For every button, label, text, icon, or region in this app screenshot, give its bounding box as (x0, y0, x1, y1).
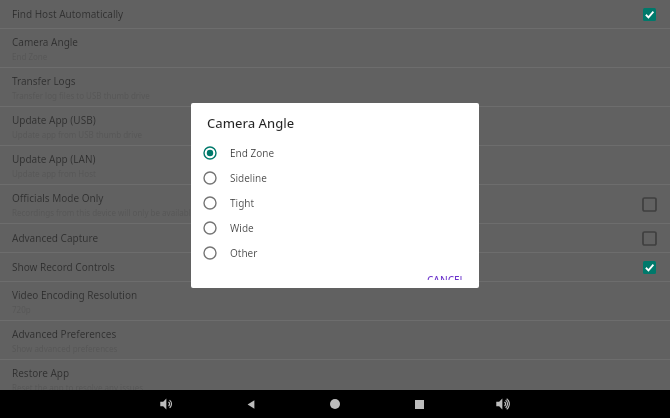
staticText: Tight (230, 196, 255, 210)
staticText: End Zone (230, 146, 275, 160)
staticText: Sideline (230, 171, 267, 185)
button[interactable]: Transfer Logs (0, 68, 670, 106)
staticText: Advanced Preferences (12, 327, 117, 341)
button[interactable]: Show Record Controls (638, 256, 660, 278)
button[interactable]: Sideline (191, 165, 479, 190)
staticText: CANCEL (427, 273, 465, 280)
staticText: Video Encoding Resolution (12, 288, 138, 302)
staticText: Other (230, 246, 258, 260)
staticText: Camera Angle (12, 35, 78, 49)
button[interactable]: Advanced Preferences (0, 321, 670, 359)
staticText: Camera Angle (207, 114, 295, 132)
button[interactable]: Tight (191, 190, 479, 215)
button[interactable]: Other (191, 240, 479, 265)
button[interactable]: Officials Mode Only (638, 193, 660, 215)
staticText: Wide (230, 221, 254, 235)
button[interactable]: Back (209, 390, 293, 418)
button[interactable]: Recents (377, 390, 461, 418)
staticText: Recordings from this device will only be… (12, 207, 236, 218)
staticText: Officials Mode Only (12, 191, 104, 205)
staticText: Find Host Automatically (12, 7, 124, 21)
button[interactable]: Wide (191, 215, 479, 240)
button[interactable]: Show Record Controls (0, 253, 670, 281)
button[interactable]: Home (293, 390, 377, 418)
staticText: Show Record Controls (12, 260, 115, 274)
button[interactable]: Volume down (125, 390, 209, 418)
button[interactable]: Advanced Capture (0, 224, 670, 252)
staticText: Advanced Capture (12, 231, 99, 245)
staticText: Transfer Logs (12, 74, 76, 88)
staticText: Update App (USB) (12, 113, 96, 127)
staticText: Reset the app to resolve any issues (12, 382, 144, 393)
staticText: Update App (LAN) (12, 152, 96, 166)
button[interactable]: Video Encoding Resolution (0, 282, 670, 320)
button[interactable]: Find Host Automatically (638, 3, 660, 25)
button[interactable]: Update App (USB) (0, 107, 670, 145)
button[interactable]: CANCEL (413, 265, 479, 288)
button[interactable]: Advanced Capture (638, 227, 660, 249)
button[interactable]: End Zone (191, 140, 479, 165)
button[interactable]: Update App (LAN) (0, 146, 670, 184)
button[interactable]: Find Host Automatically (0, 0, 670, 28)
button[interactable]: Volume up (461, 390, 545, 418)
button[interactable]: Officials Mode Only (0, 185, 670, 223)
staticText: Restore App (12, 366, 70, 380)
button[interactable]: Restore App (0, 360, 670, 398)
